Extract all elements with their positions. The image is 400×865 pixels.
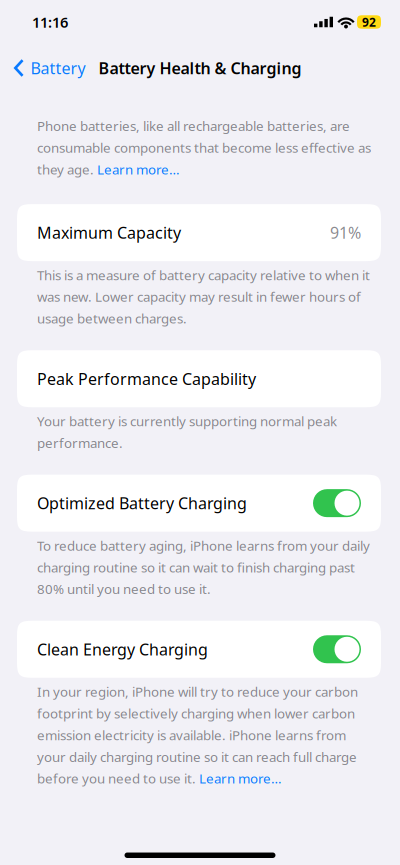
button[interactable]: Optimized Battery Charging [17,475,381,532]
staticText: To reduce battery aging, iPhone learns f… [37,537,370,598]
button[interactable]: Maximum Capacity [17,204,381,261]
staticText: Battery [30,57,85,79]
button[interactable]: Battery [0,48,97,88]
staticText: Clean Energy Charging [37,639,208,660]
staticText: Optimized Battery Charging [37,492,247,514]
staticText: Phone batteries, like all rechargeable b… [37,117,371,178]
staticText: Peak Performance Capability [37,368,256,389]
staticText: In your region, iPhone will try to reduc… [37,683,358,787]
button[interactable]: Clean Energy Charging [17,621,381,678]
staticText: 92 [362,14,376,30]
button[interactable]: Peak Performance Capability [17,350,381,407]
staticText: 91% [330,222,361,243]
staticText: This is a measure of battery capacity re… [37,266,370,327]
staticText: Maximum Capacity [37,222,181,243]
staticText: 11:16 [32,12,68,32]
staticText: Your battery is currently supporting nor… [37,412,337,452]
staticText: Battery Health & Charging [98,57,301,79]
